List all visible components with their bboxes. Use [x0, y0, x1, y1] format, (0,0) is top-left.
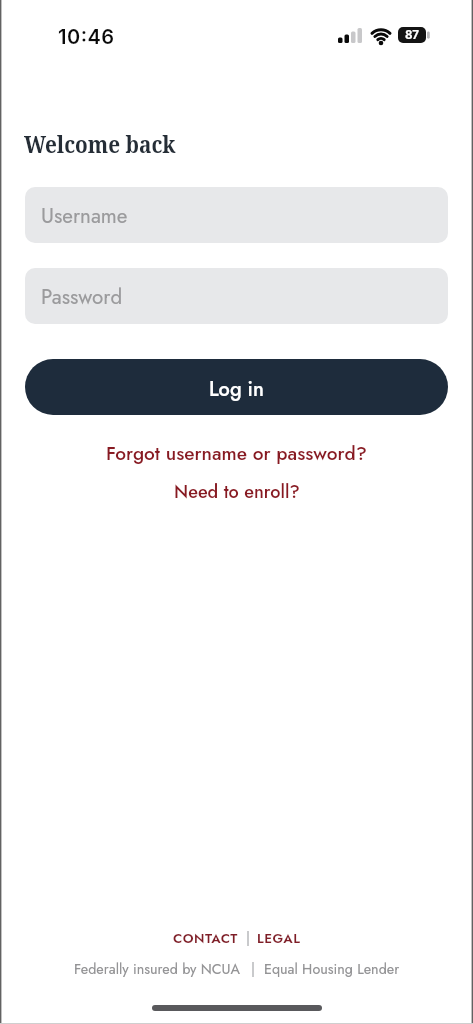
- staticText: Need to enroll?: [174, 479, 300, 505]
- staticText: Federally insured by NCUA: [74, 959, 241, 980]
- staticText: 10:46: [58, 25, 115, 49]
- button[interactable]: Username: [25, 187, 448, 243]
- staticText: CONTACT: [173, 929, 238, 948]
- staticText: 87: [405, 28, 419, 42]
- button[interactable]: Log in: [25, 359, 448, 415]
- button[interactable]: Forgot username or password?: [106, 440, 367, 468]
- button[interactable]: LEGAL: [257, 929, 301, 948]
- staticText: Log in: [209, 375, 264, 404]
- button[interactable]: Need to enroll?: [174, 479, 300, 505]
- staticText: Username: [41, 201, 128, 230]
- staticText: Password: [41, 282, 123, 311]
- button[interactable]: CONTACT: [173, 929, 238, 948]
- staticText: LEGAL: [257, 929, 301, 948]
- staticText: Equal Housing Lender: [264, 959, 400, 980]
- staticText: Forgot username or password?: [106, 440, 367, 468]
- staticText: Welcome back: [24, 128, 176, 160]
- button[interactable]: Password: [25, 268, 448, 324]
